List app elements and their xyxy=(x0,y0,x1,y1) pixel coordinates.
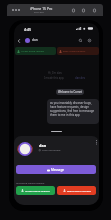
staticText: Incoming friend request xyxy=(16,181,45,184)
button[interactable]: Search xyxy=(77,37,84,44)
staticText: Reject friend request xyxy=(67,189,91,192)
staticText: Reject friend request xyxy=(63,50,86,53)
staticText: 4:45 xyxy=(24,27,32,32)
button[interactable]: Rotate device xyxy=(70,7,76,13)
button[interactable]: Accept friend request xyxy=(15,47,56,55)
staticText: Copy username xyxy=(42,148,61,151)
button[interactable]: Reject friend request xyxy=(57,47,99,55)
staticText: Accept friend request xyxy=(25,189,50,192)
button[interactable]: More options xyxy=(93,139,99,145)
button[interactable]: More options xyxy=(91,7,97,13)
staticText: I made this app. xyxy=(44,76,65,80)
staticText: Message xyxy=(51,168,65,172)
staticText: iPhone 15 Pro xyxy=(30,6,53,11)
staticText: Accept friend request xyxy=(21,50,45,53)
staticText: dan.dev xyxy=(75,76,86,80)
button[interactable]: Settings xyxy=(86,37,93,44)
staticText: as you invariably discover bugs, have fe… xyxy=(50,101,96,117)
button[interactable]: Zoom xyxy=(80,7,86,13)
staticText: Hi, I'm dan. xyxy=(48,71,63,75)
staticText: dan xyxy=(39,143,47,148)
staticText: 393 x 852 xyxy=(34,11,44,14)
button[interactable]: Back xyxy=(15,37,22,44)
staticText: Welcome to Comet xyxy=(58,90,82,94)
button[interactable]: Reject friend request xyxy=(57,186,96,195)
button[interactable]: Message xyxy=(16,165,96,174)
staticText: dan xyxy=(32,38,38,42)
button[interactable]: Accept friend request xyxy=(16,186,55,195)
